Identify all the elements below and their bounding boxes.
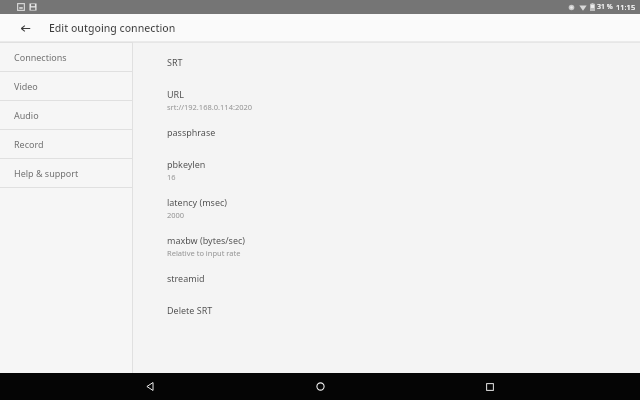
button[interactable]: Delete SRT [133, 297, 640, 329]
staticText: streamid [167, 272, 205, 284]
staticText: 16 [167, 172, 176, 182]
button[interactable]: URL [133, 81, 640, 119]
staticText: Record [14, 138, 44, 150]
staticText: maxbw (bytes/sec) [167, 234, 246, 246]
staticText: Relative to input rate [167, 248, 241, 258]
button[interactable]: Back [130, 373, 170, 400]
button[interactable]: SRT [133, 49, 640, 81]
button[interactable]: pbkeylen [133, 151, 640, 189]
staticText: Connections [14, 51, 67, 63]
staticText: Audio [14, 109, 39, 121]
button[interactable]: Video [0, 72, 132, 100]
button[interactable]: maxbw (bytes/sec) [133, 227, 640, 265]
staticText: srt://192.168.0.114:2020 [167, 102, 253, 112]
button[interactable]: Connections [0, 43, 132, 71]
button[interactable]: passphrase [133, 119, 640, 151]
button[interactable]: streamid [133, 265, 640, 297]
button[interactable]: Recent apps [470, 373, 510, 400]
staticText: Edit outgoing connection [49, 21, 176, 35]
button[interactable]: latency (msec) [133, 189, 640, 227]
staticText: Video [14, 80, 38, 92]
staticText: passphrase [167, 126, 216, 138]
staticText: pbkeylen [167, 158, 206, 170]
button[interactable]: Home [300, 373, 340, 400]
staticText: 31 % [597, 2, 613, 12]
staticText: Help & support [14, 167, 79, 179]
staticText: latency (msec) [167, 196, 228, 208]
staticText: Delete SRT [167, 304, 213, 316]
button[interactable]: Help & support [0, 159, 132, 187]
staticText: SRT [167, 56, 183, 68]
staticText: 11:15 [616, 2, 636, 12]
staticText: URL [167, 88, 184, 100]
button[interactable]: Back [13, 16, 37, 40]
staticText: 2000 [167, 210, 185, 220]
button[interactable]: Audio [0, 101, 132, 129]
button[interactable]: Record [0, 130, 132, 158]
